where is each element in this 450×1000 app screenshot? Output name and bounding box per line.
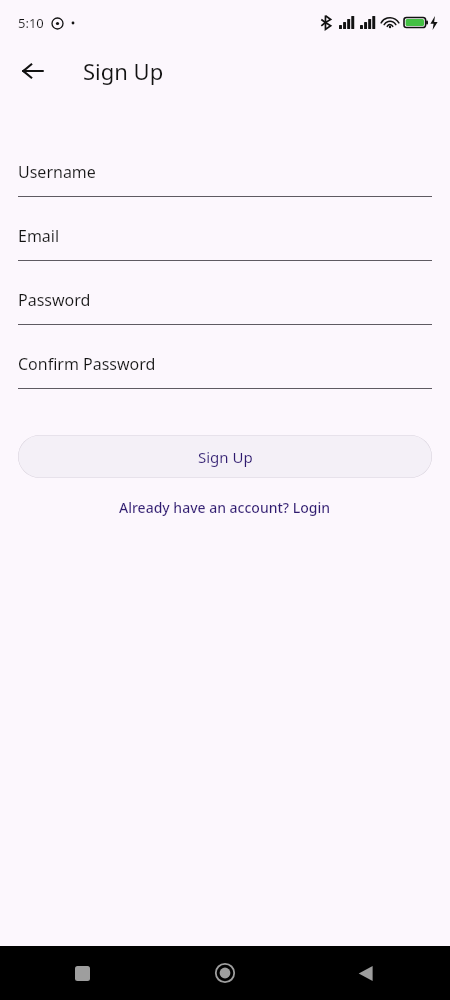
staticText: Sign Up — [83, 56, 164, 86]
button[interactable]: Email — [0, 212, 450, 276]
staticText: Already have an account? Login — [119, 498, 331, 517]
staticText: Username — [18, 161, 96, 183]
button[interactable]: Home — [203, 951, 247, 995]
button[interactable]: Username — [0, 148, 450, 212]
button[interactable]: Back — [13, 51, 53, 91]
button[interactable]: Confirm Password — [0, 340, 450, 404]
button[interactable]: Already have an account? Login — [111, 494, 339, 521]
staticText: Email — [18, 225, 60, 247]
staticText: 5:10 — [18, 14, 44, 32]
button[interactable]: Recent apps — [60, 951, 104, 995]
button[interactable]: Sign Up — [18, 435, 432, 478]
button[interactable]: Password — [0, 276, 450, 340]
staticText: Password — [18, 289, 91, 311]
staticText: Confirm Password — [18, 353, 156, 375]
button[interactable]: Back — [343, 951, 387, 995]
staticText: Sign Up — [198, 447, 253, 467]
